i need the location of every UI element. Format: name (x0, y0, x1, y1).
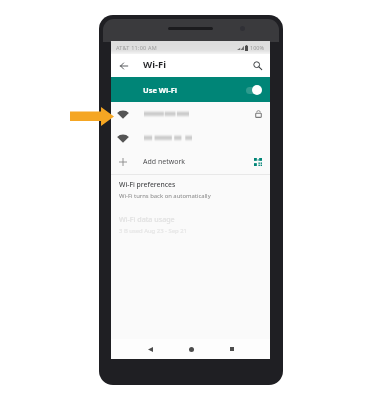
staticText: Use Wi-Fi (143, 85, 178, 95)
staticText: Wi-Fi (143, 58, 167, 71)
button[interactable]: Scan QR code (252, 156, 264, 168)
staticText: AT&T 11:00 AM (116, 44, 157, 51)
staticText: 3 B used Aug 23 - Sep 21 (119, 227, 187, 235)
button[interactable]: my-home-wifi-5 (111, 126, 270, 150)
button[interactable]: Search (249, 57, 266, 74)
button[interactable]: Back (115, 57, 132, 74)
button[interactable]: Use Wi-Fi (111, 77, 270, 102)
button[interactable]: Wi-Fi preferences (111, 175, 270, 204)
button[interactable]: Back (142, 341, 158, 357)
button[interactable]: Wi-Fi data usage (111, 214, 270, 235)
staticText: 100% (250, 44, 265, 51)
staticText: Wi-Fi preferences (119, 180, 176, 189)
staticText: Wi-Fi data usage (119, 214, 175, 224)
staticText: Wi-Fi turns back on automatically (119, 192, 211, 200)
other: wifi-network-1 (144, 110, 189, 118)
button[interactable]: Recent apps (224, 341, 240, 357)
button[interactable]: Add network (111, 150, 270, 174)
button[interactable]: wifi-network-1 (111, 102, 270, 126)
other: my-home-wifi-5 (144, 134, 192, 142)
staticText: Add network (143, 157, 186, 167)
button[interactable]: Home (183, 341, 199, 357)
